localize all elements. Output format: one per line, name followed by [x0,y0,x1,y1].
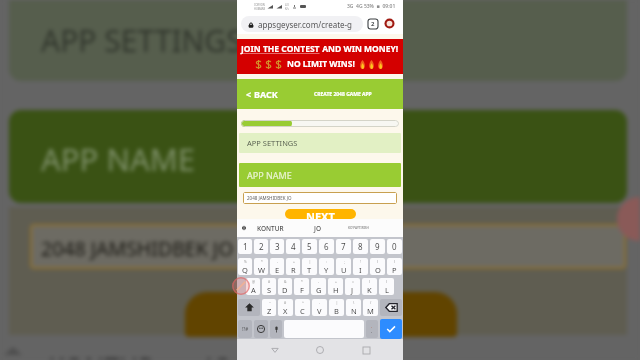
button[interactable]: 9 [370,239,385,254]
staticText: ( [369,279,371,284]
staticText: L [385,285,389,295]
staticText: ( [377,259,379,264]
staticText: - [277,259,279,264]
button[interactable]: ^ [295,299,310,316]
button[interactable]: 6 [319,239,334,254]
button[interactable]: 2 [254,239,268,254]
staticText: & [284,279,287,284]
button[interactable]: - [311,278,326,295]
button[interactable]: Period [366,320,378,338]
button[interactable]: 7 [336,239,351,254]
button[interactable]: APP SETTINGS [239,133,401,153]
button[interactable]: = [345,278,360,295]
button[interactable]: Recents [358,342,374,358]
staticText: 2048 JAMSHIDBEK JO [41,235,234,262]
staticText: 2 [371,20,375,28]
staticText: M [367,306,374,316]
staticText: H [333,285,339,295]
button[interactable]: 4 [286,239,300,254]
button[interactable]: 1 [238,239,252,254]
staticText: * [261,259,263,264]
staticText: S [267,285,272,295]
button[interactable]: - [270,258,284,275]
staticText: K/s [285,7,289,11]
button[interactable]: Shift [238,299,260,316]
staticText: CORVON [254,3,265,7]
button[interactable]: ) [379,278,394,295]
staticText: | [309,259,311,264]
button[interactable]: Profile [384,18,395,29]
staticText: , [371,323,373,328]
staticText: JOIN THE CONTEST [241,43,320,55]
staticText: @ [252,279,256,284]
button[interactable]: - [312,299,327,316]
staticText: + [335,279,337,284]
staticText: # [268,279,271,284]
staticText: V [317,306,322,316]
staticText: U [341,265,347,275]
button[interactable]: Backspace [380,299,402,316]
button[interactable]: Home [312,342,328,358]
button[interactable]: < [243,84,281,104]
button[interactable]: Voice input [270,320,282,338]
button[interactable]: Back [267,342,283,358]
staticText: ) [386,279,388,284]
button[interactable]: @ [246,278,260,295]
staticText: APP SETTINGS [41,20,243,61]
button[interactable]: 5 [302,239,317,254]
button[interactable]: ; [336,258,351,275]
staticText: JO [314,224,321,233]
button[interactable]: Emoji [254,320,268,338]
staticText: ) [394,259,396,264]
staticText: N [351,306,357,316]
button[interactable]: ~ [262,299,276,316]
staticText: 5 [307,241,312,252]
staticText: Z [267,306,272,316]
button[interactable]: | [302,258,317,275]
staticText: O [375,265,381,275]
button[interactable]: NEXT [285,209,356,219]
button[interactable]: Enter [380,319,402,339]
button[interactable]: : [319,258,334,275]
staticText: D [282,285,288,295]
button[interactable]: ( [370,258,385,275]
button[interactable]: / [363,299,378,316]
staticText: 6 [324,241,329,252]
button[interactable]: \ [346,299,361,316]
button[interactable]: 3 [270,239,284,254]
staticText: NEXT [306,209,335,219]
staticText: ; [344,259,345,264]
staticText: E [275,265,280,275]
staticText: KO'PAYTIRISH [348,226,369,230]
staticText: P [392,265,397,275]
button[interactable]: ( [362,278,377,295]
staticText: 2048 JAMSHIDBEK JO [247,195,292,201]
button[interactable]: * [294,278,309,295]
button[interactable]: Tabs [368,19,378,29]
button[interactable]: ) [387,258,402,275]
staticText: J [351,285,354,295]
button[interactable]: Symbols [238,320,252,338]
button[interactable]: + [328,278,343,295]
staticText: T [307,265,312,275]
button[interactable]: | [329,299,344,316]
staticText: 3G 4G 53% ▪ 09:01 [347,3,396,10]
button[interactable]: ! [353,258,368,275]
staticText: I [359,265,362,275]
staticText: appsgeyser.com/create-g [258,19,353,30]
staticText: R [291,265,296,275]
button[interactable]: Address bar [241,16,363,32]
staticText: | [336,300,338,305]
button[interactable]: 0 [387,239,402,254]
button[interactable]: + [286,258,300,275]
button[interactable]: # [278,299,293,316]
button[interactable]: 2048 JAMSHIDBEK JO [243,192,397,204]
button[interactable]: 8 [353,239,368,254]
staticText: 4.0 [285,3,289,7]
staticText: . [371,328,373,335]
button[interactable]: & [278,278,292,295]
button[interactable]: % [238,258,252,275]
button[interactable]: * [254,258,268,275]
button[interactable]: # [262,278,276,295]
